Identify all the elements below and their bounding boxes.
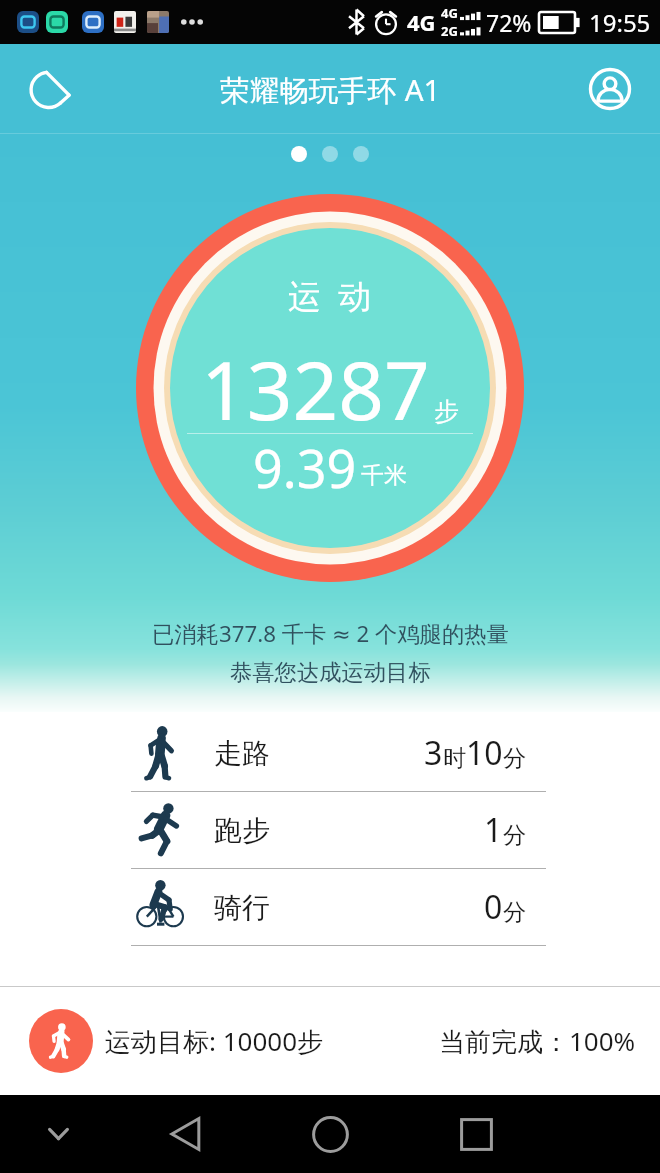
staticText: 3 — [424, 731, 443, 775]
button[interactable]: Device — [18, 57, 82, 121]
staticText: 步 — [434, 396, 459, 427]
staticText: 19:55 — [589, 6, 651, 39]
staticText: 0 — [484, 885, 503, 929]
button[interactable]: Recent apps — [436, 1095, 516, 1173]
staticText: 4G — [407, 7, 436, 37]
staticText: 荣耀畅玩手环 A1 — [220, 69, 441, 109]
staticText: 9.39 — [253, 432, 357, 503]
staticText: 4G — [441, 4, 458, 22]
staticText: 运 动 — [288, 273, 372, 318]
staticText: 时 — [443, 744, 466, 773]
staticText: 走路 — [214, 736, 270, 771]
button[interactable]: Account — [578, 57, 642, 121]
staticText: 72% — [486, 7, 532, 38]
staticText: 1 — [484, 808, 503, 852]
staticText: 骑行 — [214, 890, 270, 925]
staticText: 2G — [441, 22, 458, 40]
button[interactable]: Hide — [22, 1095, 94, 1173]
button[interactable]: Home — [290, 1095, 370, 1173]
staticText: 恭喜您达成运动目标 — [230, 659, 431, 687]
staticText: 跑步 — [214, 813, 270, 848]
staticText: 千米 — [361, 461, 407, 490]
button[interactable]: 跑步 — [0, 792, 660, 868]
staticText: 运动目标: 10000步 — [105, 1023, 324, 1059]
staticText: 分 — [503, 821, 526, 850]
button[interactable]: 运动目标: 10000步 — [0, 987, 660, 1095]
staticText: 已消耗377.8 千卡 ≈ 2 个鸡腿的热量 — [152, 618, 509, 648]
button[interactable]: Back — [145, 1095, 225, 1173]
staticText: 分 — [503, 898, 526, 927]
staticText: 当前完成：100% — [439, 1023, 636, 1059]
button[interactable]: 走路 — [0, 715, 660, 791]
staticText: 10 — [466, 731, 503, 775]
button[interactable]: 骑行 — [0, 869, 660, 945]
staticText: 13287 — [201, 334, 430, 443]
staticText: 分 — [503, 744, 526, 773]
